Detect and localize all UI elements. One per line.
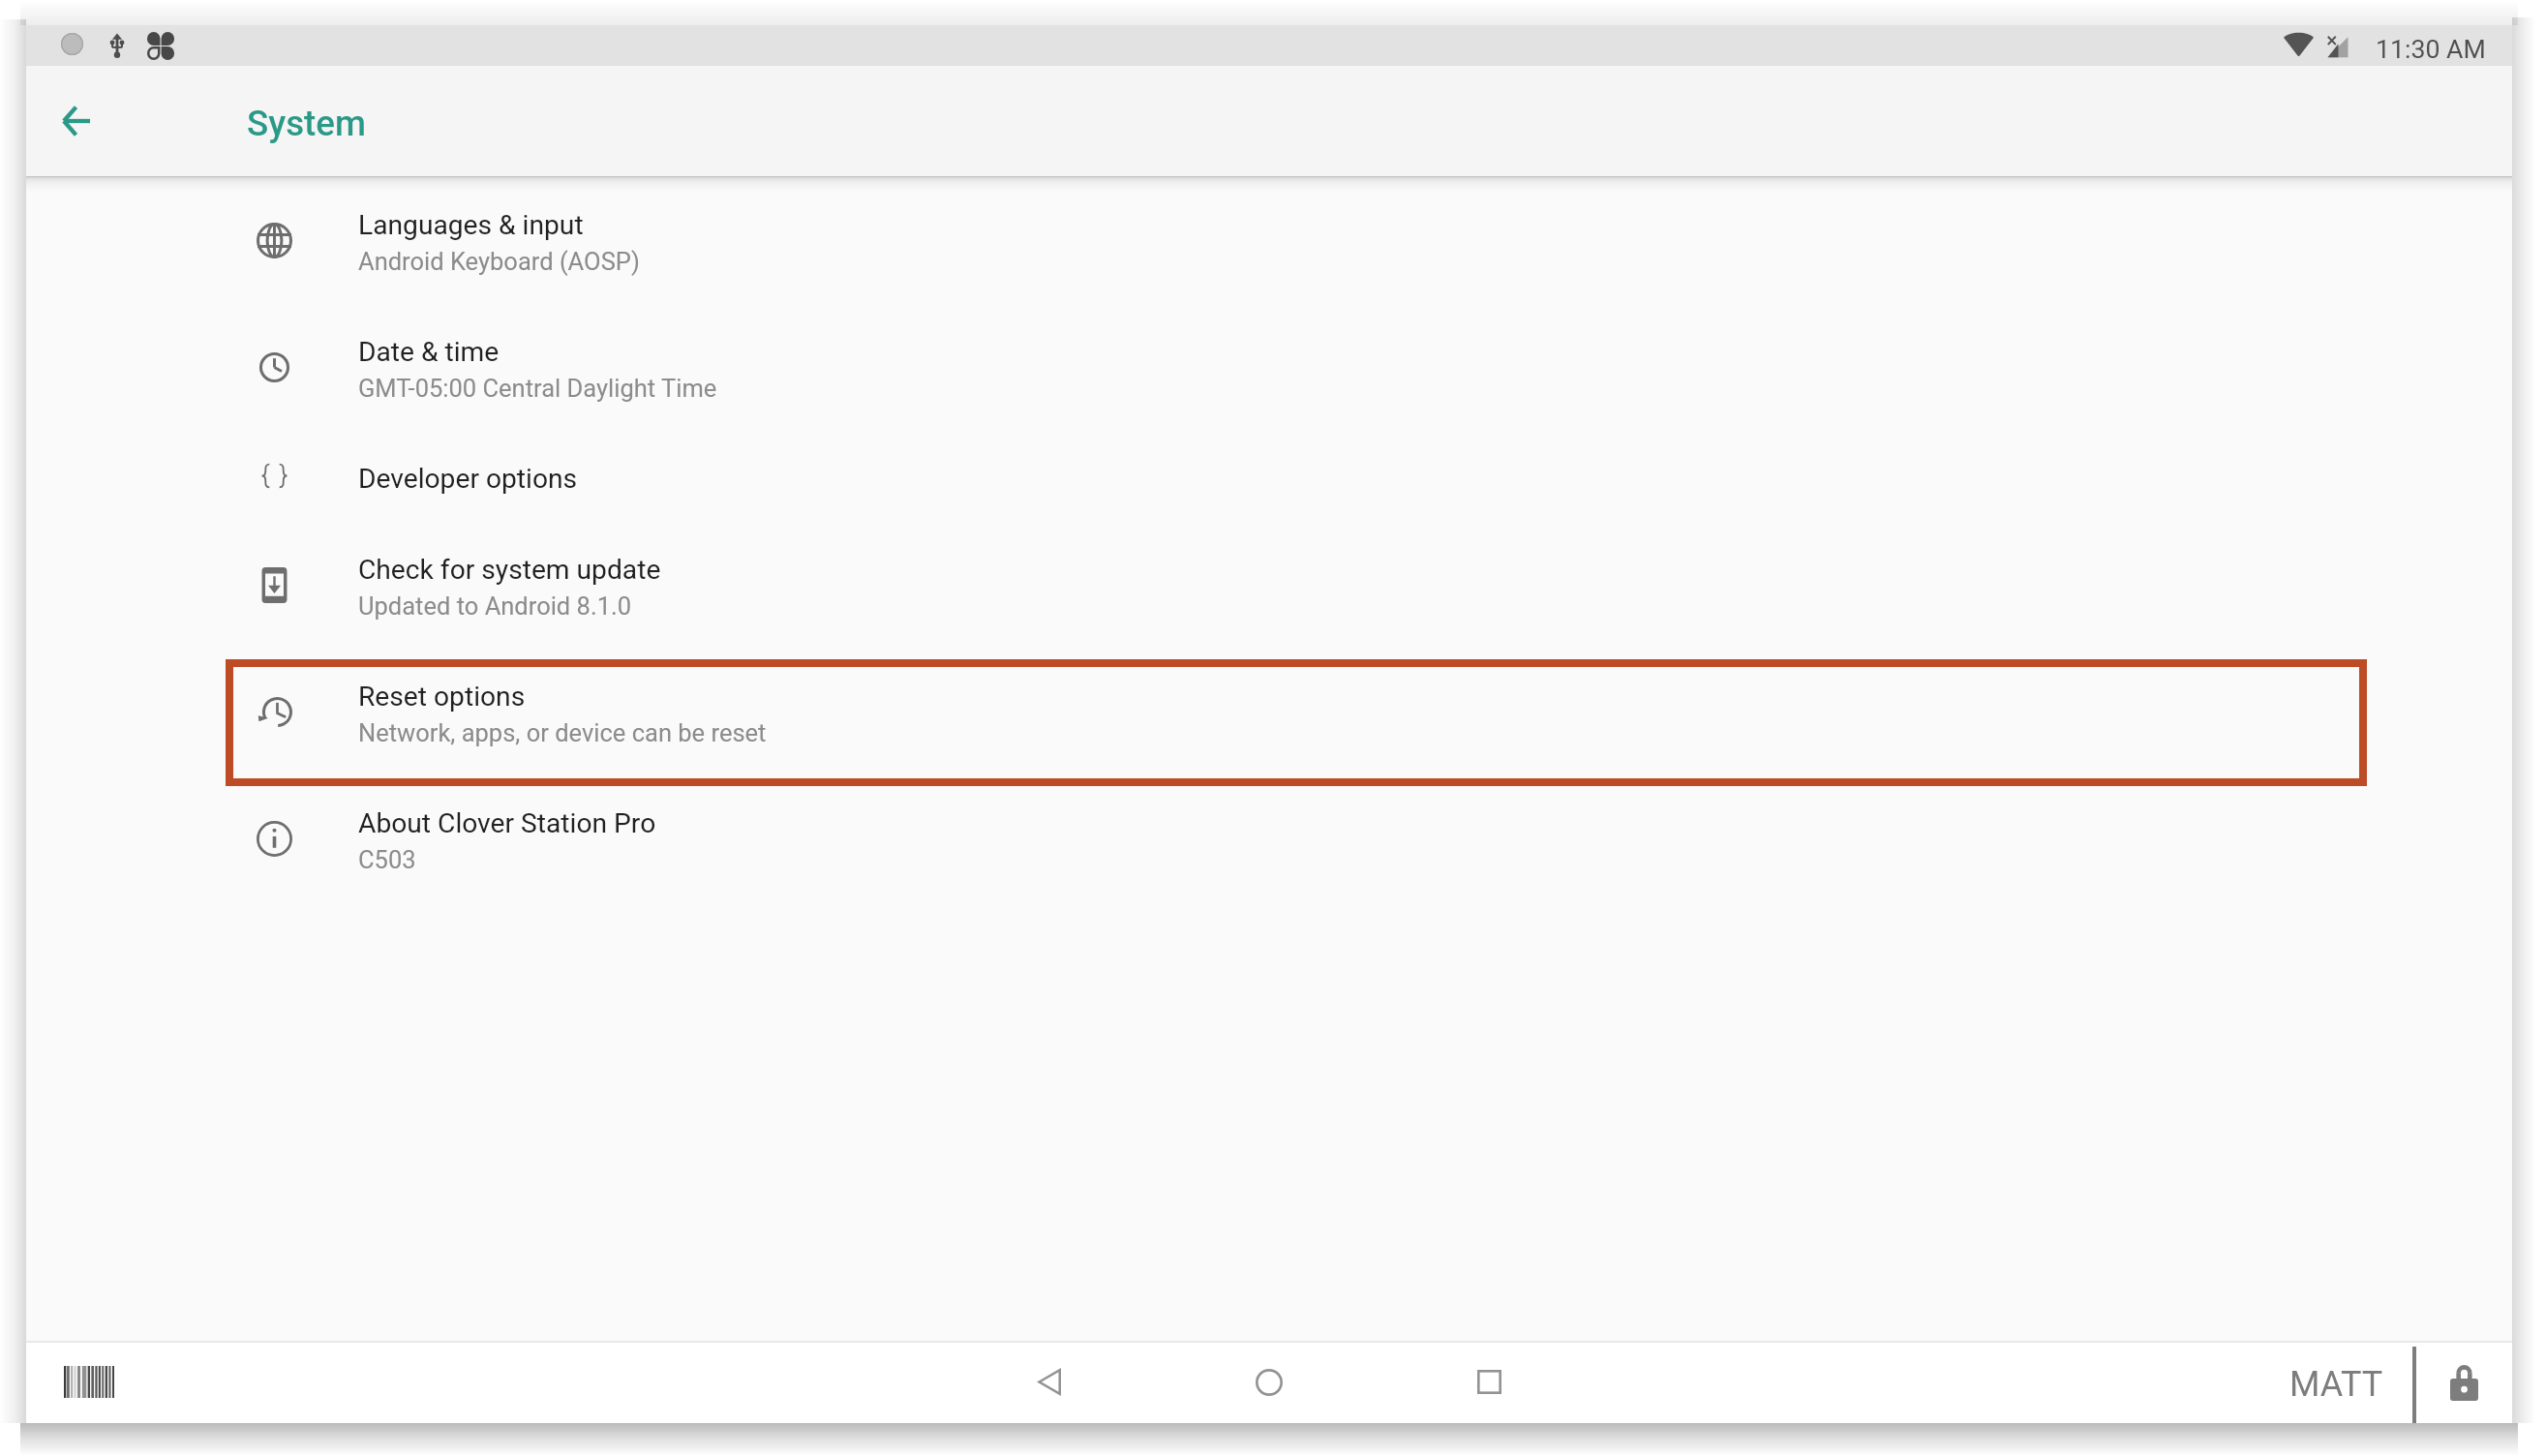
- staticText: Date & time: [358, 336, 500, 368]
- button[interactable]: Languages & input: [26, 188, 2512, 315]
- staticText: Developer options: [358, 463, 578, 495]
- staticText: Updated to Android 8.1.0: [358, 591, 632, 621]
- button[interactable]: Lock: [2429, 1352, 2500, 1412]
- button[interactable]: MATT: [2260, 1341, 2415, 1423]
- staticText: About Clover Station Pro: [358, 807, 656, 839]
- button[interactable]: Scan barcode: [45, 1350, 135, 1412]
- staticText: 11:30 AM: [2376, 34, 2486, 64]
- button[interactable]: Date & time: [26, 315, 2512, 441]
- button[interactable]: About Clover Station Pro: [26, 786, 2512, 913]
- button[interactable]: Developer options: [26, 441, 2512, 532]
- button[interactable]: Back: [28, 66, 123, 176]
- button[interactable]: Check for system update: [26, 532, 2512, 659]
- staticText: Reset options: [358, 681, 526, 713]
- staticText: Languages & input: [358, 209, 584, 241]
- button[interactable]: Back: [1001, 1341, 1098, 1423]
- staticText: MATT: [2289, 1364, 2383, 1405]
- button[interactable]: Home: [1221, 1341, 1318, 1423]
- staticText: Check for system update: [358, 554, 661, 586]
- staticText: C503: [358, 845, 416, 874]
- button[interactable]: Reset options: [26, 659, 2512, 786]
- button[interactable]: Recents: [1440, 1341, 1537, 1423]
- staticText: GMT-05:00 Central Daylight Time: [358, 374, 717, 403]
- staticText: System: [247, 103, 366, 144]
- staticText: Network, apps, or device can be reset: [358, 718, 767, 747]
- staticText: Android Keyboard (AOSP): [358, 247, 640, 276]
